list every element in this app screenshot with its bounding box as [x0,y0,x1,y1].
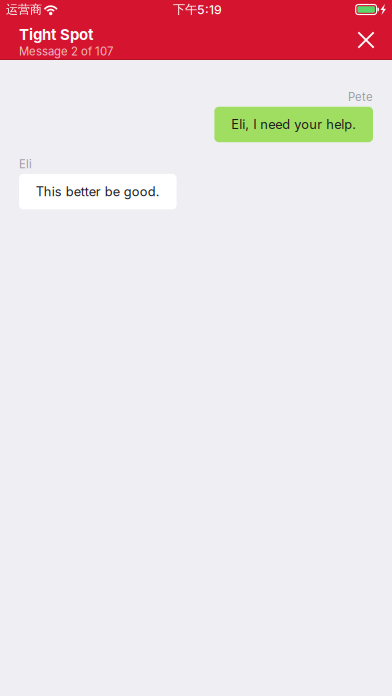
staticText: Message 2 of 107 [19,45,113,58]
staticText: Eli, I need your help. [231,117,356,132]
staticText: Eli [19,157,32,171]
staticText: Tight Spot [19,25,93,44]
staticText: 下午5:19 [173,2,222,17]
staticText: 运营商 [6,2,42,17]
staticText: Pete [348,90,373,104]
staticText: This better be good. [36,184,160,199]
button[interactable]: Close [344,19,388,59]
